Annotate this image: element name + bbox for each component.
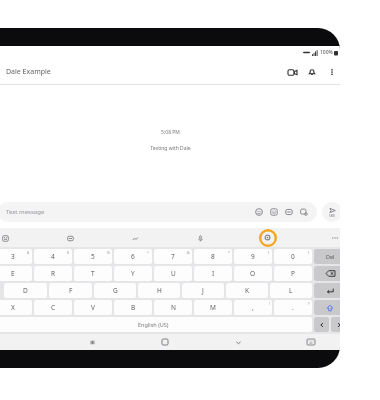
button[interactable]: Home xyxy=(157,334,173,350)
button[interactable]: B xyxy=(114,300,152,315)
staticText: ! xyxy=(269,301,270,306)
button[interactable]: Recents xyxy=(84,334,100,350)
staticText: P xyxy=(291,269,295,278)
staticText: % xyxy=(107,250,110,255)
staticText: 100% xyxy=(320,49,333,56)
button[interactable]: 7 xyxy=(154,249,192,264)
staticText: V xyxy=(91,303,95,312)
button[interactable]: T xyxy=(74,266,112,281)
button[interactable]: Image xyxy=(63,231,77,245)
staticText: ^ xyxy=(147,250,150,255)
staticText: 5:08 PM xyxy=(161,129,180,136)
button[interactable]: Video call xyxy=(284,64,300,80)
staticText: D xyxy=(23,286,28,295)
button[interactable]: G xyxy=(94,283,136,298)
staticText: X xyxy=(11,303,15,312)
button[interactable]: I xyxy=(194,266,232,281)
staticText: 5 xyxy=(91,252,95,261)
button[interactable]: U xyxy=(154,266,192,281)
staticText: 6 xyxy=(131,252,135,261)
staticText: I xyxy=(212,269,215,278)
staticText: U xyxy=(171,269,176,278)
button[interactable]: H xyxy=(138,283,180,298)
button[interactable]: Handwriting xyxy=(128,231,142,245)
button[interactable]: Sticker xyxy=(269,207,279,217)
button[interactable]: V xyxy=(74,300,112,315)
button[interactable]: More xyxy=(328,231,340,245)
button[interactable]: Keyboard layout xyxy=(303,334,319,350)
button[interactable]: More options xyxy=(324,64,340,80)
staticText: Dale Example xyxy=(6,67,51,77)
staticText: ( xyxy=(268,250,270,255)
button[interactable]: N xyxy=(154,300,192,315)
button[interactable]: 4 xyxy=(34,249,72,264)
button[interactable]: Previous xyxy=(314,317,329,332)
button[interactable]: Del xyxy=(314,249,340,264)
button[interactable]: Stickers xyxy=(0,231,12,245)
staticText: O xyxy=(250,269,256,278)
staticText: F xyxy=(69,286,73,295)
button[interactable]: 5 xyxy=(74,249,112,264)
button[interactable]: R xyxy=(34,266,72,281)
button[interactable]: 0 xyxy=(274,249,312,264)
button[interactable]: English (US) xyxy=(0,317,312,332)
button[interactable]: Send SMS xyxy=(322,202,340,222)
button[interactable]: K xyxy=(226,283,268,298)
staticText: 7 xyxy=(171,252,175,261)
staticText: ) xyxy=(308,250,310,255)
button[interactable]: P xyxy=(274,266,312,281)
button[interactable]: . xyxy=(274,300,312,315)
button[interactable]: 8 xyxy=(194,249,232,264)
button[interactable]: enter xyxy=(314,283,340,298)
button[interactable]: Gallery xyxy=(284,207,294,217)
staticText: C xyxy=(51,303,56,312)
staticText: ? xyxy=(308,301,310,306)
staticText: T xyxy=(91,269,95,278)
button[interactable]: Hide keyboard xyxy=(230,334,246,350)
button[interactable]: Keyboard settings xyxy=(258,228,277,247)
staticText: G xyxy=(113,286,118,295)
staticText: K xyxy=(245,286,250,295)
staticText: , xyxy=(252,303,254,312)
staticText: # xyxy=(27,250,30,255)
button[interactable]: M xyxy=(194,300,232,315)
staticText: SMS xyxy=(329,214,336,218)
button[interactable]: Y xyxy=(114,266,152,281)
button[interactable]: Next xyxy=(331,317,340,332)
button[interactable]: shift xyxy=(314,300,340,315)
button[interactable]: J xyxy=(182,283,224,298)
button[interactable]: F xyxy=(49,283,92,298)
button[interactable]: C xyxy=(34,300,72,315)
staticText: $ xyxy=(67,250,70,255)
button[interactable]: E xyxy=(0,266,32,281)
staticText: * xyxy=(228,250,230,255)
button[interactable]: Attach xyxy=(299,207,309,217)
button[interactable]: D xyxy=(4,283,47,298)
staticText: English (US) xyxy=(138,321,169,328)
staticText: R xyxy=(51,269,56,278)
staticText: B xyxy=(131,303,136,312)
button[interactable]: 3 xyxy=(0,249,32,264)
staticText: 3 xyxy=(11,252,15,261)
staticText: L xyxy=(289,286,293,295)
button[interactable]: Voice input xyxy=(193,231,207,245)
button[interactable]: 9 xyxy=(234,249,272,264)
staticText: . xyxy=(292,303,294,312)
staticText: H xyxy=(157,286,162,295)
staticText: N xyxy=(171,303,176,312)
button[interactable]: Emoji xyxy=(254,207,264,217)
button[interactable]: , xyxy=(234,300,272,315)
button[interactable]: X xyxy=(0,300,32,315)
staticText: Texting with Dale xyxy=(150,145,191,152)
staticText: M xyxy=(210,303,216,312)
button[interactable]: 6 xyxy=(114,249,152,264)
staticText: Del xyxy=(326,253,335,260)
staticText: 4 xyxy=(51,252,55,261)
button[interactable]: O xyxy=(234,266,272,281)
button[interactable]: bksp xyxy=(314,266,340,281)
staticText: J xyxy=(202,286,204,295)
button[interactable]: Notifications xyxy=(304,64,320,80)
staticText: & xyxy=(187,250,190,255)
button[interactable]: Text message xyxy=(0,202,317,222)
button[interactable]: L xyxy=(270,283,312,298)
